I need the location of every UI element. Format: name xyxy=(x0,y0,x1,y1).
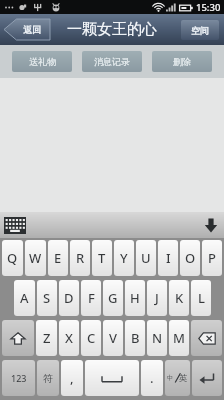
staticText: M xyxy=(173,329,185,347)
button[interactable]: U xyxy=(136,240,156,276)
staticText: W xyxy=(29,249,42,267)
button[interactable]: K xyxy=(169,280,189,316)
button[interactable]: Enter xyxy=(192,360,222,396)
button[interactable]: M xyxy=(169,320,189,356)
button[interactable]: X xyxy=(59,320,79,356)
staticText: X xyxy=(65,329,73,347)
button[interactable]: S xyxy=(37,280,57,316)
button[interactable]: Backspace xyxy=(191,320,222,356)
staticText: P xyxy=(208,249,216,267)
staticText: 删除 xyxy=(173,56,191,67)
staticText: F xyxy=(88,289,95,307)
staticText: V xyxy=(109,329,117,347)
staticText: I xyxy=(166,249,171,267)
button[interactable]: F xyxy=(81,280,101,316)
button[interactable]: Hide keyboard xyxy=(203,217,219,234)
staticText: C xyxy=(87,329,96,347)
button[interactable]: V xyxy=(103,320,123,356)
button[interactable]: 中 xyxy=(165,360,190,396)
staticText: 一颗女王的心 xyxy=(67,20,157,39)
staticText: N xyxy=(152,329,163,347)
staticText: G xyxy=(108,289,118,307)
button[interactable]: D xyxy=(59,280,79,316)
staticText: 英 xyxy=(179,373,188,384)
staticText: J xyxy=(155,289,159,307)
staticText: S xyxy=(43,289,51,307)
button[interactable]: L xyxy=(191,280,211,316)
staticText: 空间 xyxy=(191,25,209,36)
staticText: K xyxy=(175,289,184,307)
button[interactable]: . xyxy=(141,360,163,396)
button[interactable]: 返回 xyxy=(4,19,52,40)
staticText: , xyxy=(70,369,74,387)
button[interactable]: H xyxy=(125,280,145,316)
button[interactable]: O xyxy=(180,240,200,276)
button[interactable]: Y xyxy=(114,240,134,276)
staticText: 符 xyxy=(43,372,53,385)
button[interactable]: G xyxy=(103,280,123,316)
staticText: . xyxy=(150,369,154,387)
staticText: O xyxy=(185,249,196,267)
staticText: 送礼物 xyxy=(29,56,56,67)
button[interactable]: , xyxy=(61,360,83,396)
button[interactable]: P xyxy=(202,240,222,276)
staticText: L xyxy=(198,289,205,307)
button[interactable]: N xyxy=(147,320,167,356)
button[interactable]: 123 xyxy=(2,360,35,396)
staticText: 中 xyxy=(167,374,174,382)
staticText: 返回 xyxy=(23,24,41,35)
button[interactable]: Q xyxy=(2,240,23,276)
button[interactable]: T xyxy=(92,240,112,276)
staticText: T xyxy=(98,249,106,267)
button[interactable]: 符 xyxy=(37,360,59,396)
staticText: 123 xyxy=(11,372,27,384)
staticText: Q xyxy=(7,249,18,267)
staticText: B xyxy=(131,329,140,347)
button[interactable]: J xyxy=(147,280,167,316)
staticText: D xyxy=(64,289,74,307)
button[interactable]: W xyxy=(25,240,46,276)
button[interactable]: 空间 xyxy=(181,20,219,40)
button[interactable]: Space xyxy=(85,360,139,396)
button[interactable]: I xyxy=(158,240,178,276)
staticText: H xyxy=(130,289,140,307)
staticText: E xyxy=(54,249,62,267)
button[interactable]: E xyxy=(48,240,68,276)
button[interactable]: Shift xyxy=(2,320,34,356)
button[interactable]: R xyxy=(70,240,90,276)
button[interactable]: 消息记录 xyxy=(82,51,142,72)
button[interactable]: B xyxy=(125,320,145,356)
button[interactable]: 删除 xyxy=(152,51,212,72)
staticText: 消息记录 xyxy=(94,56,130,67)
button[interactable]: C xyxy=(81,320,101,356)
staticText: Y xyxy=(120,249,128,267)
button[interactable]: Switch keyboard xyxy=(4,217,26,234)
staticText: Z xyxy=(43,329,51,347)
staticText: 15:30 xyxy=(196,1,221,14)
button[interactable]: Z xyxy=(36,320,57,356)
staticText: U xyxy=(141,249,151,267)
button[interactable]: A xyxy=(14,280,35,316)
button[interactable]: 送礼物 xyxy=(12,51,72,72)
staticText: R xyxy=(76,249,85,267)
staticText: A xyxy=(20,289,29,307)
